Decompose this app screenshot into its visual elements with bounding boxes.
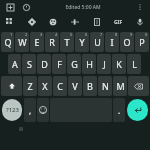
staticText: T: [64, 36, 70, 48]
button[interactable]: R: [45, 32, 59, 52]
button[interactable]: B: [83, 76, 97, 96]
staticText: Z: [27, 80, 33, 92]
staticText: 5: [70, 32, 73, 37]
button[interactable]: Emoji: [37, 98, 49, 122]
staticText: 3: [40, 32, 43, 37]
button[interactable]: E: [30, 32, 44, 52]
button[interactable]: Backspace: [128, 76, 149, 96]
staticText: Y: [79, 36, 85, 48]
button[interactable]: Enter: [127, 99, 148, 121]
button[interactable]: V: [68, 76, 82, 96]
staticText: .: [118, 105, 121, 116]
staticText: I: [110, 36, 114, 48]
button[interactable]: Adjust: [68, 15, 82, 29]
button[interactable]: K: [112, 54, 126, 74]
staticText: K: [116, 58, 122, 70]
staticText: A: [12, 58, 18, 70]
button[interactable]: .: [113, 98, 125, 122]
button[interactable]: Reminder: [20, 1, 32, 13]
staticText: 9: [130, 32, 133, 37]
staticText: X: [42, 80, 48, 92]
staticText: S: [27, 58, 32, 70]
button[interactable]: S: [22, 54, 36, 74]
button[interactable]: Q: [1, 32, 14, 52]
button[interactable]: M: [113, 76, 127, 96]
button[interactable]: Shift: [1, 76, 22, 96]
button[interactable]: ,: [24, 98, 36, 122]
button[interactable]: GIF: [111, 15, 125, 29]
staticText: Edited 5:00 AM: [65, 4, 101, 11]
button[interactable]: N: [98, 76, 112, 96]
staticText: GIF: [114, 19, 123, 26]
button[interactable]: L: [127, 54, 141, 74]
staticText: 1: [10, 32, 13, 37]
staticText: J: [103, 58, 106, 70]
staticText: G: [71, 58, 78, 70]
staticText: 2: [25, 32, 28, 37]
staticText: F: [57, 58, 62, 70]
button[interactable]: A: [8, 54, 21, 74]
button[interactable]: O: [120, 32, 134, 52]
staticText: O: [123, 36, 131, 48]
staticText: 6: [85, 32, 88, 37]
staticText: R: [49, 36, 55, 48]
button[interactable]: Z: [23, 76, 37, 96]
button[interactable]: W: [15, 32, 29, 52]
button[interactable]: J: [97, 54, 111, 74]
staticText: D: [41, 58, 48, 70]
staticText: U: [94, 36, 101, 48]
button[interactable]: H: [82, 54, 96, 74]
button[interactable]: G: [67, 54, 81, 74]
button[interactable]: Voice input: [133, 15, 147, 29]
staticText: N: [102, 80, 109, 92]
staticText: H: [86, 58, 93, 70]
button[interactable]: Clipboard: [90, 15, 104, 29]
staticText: 7: [100, 32, 103, 37]
button[interactable]: U: [90, 32, 104, 52]
staticText: V: [72, 80, 78, 92]
button[interactable]: D: [37, 54, 51, 74]
staticText: B: [87, 80, 93, 92]
button[interactable]: T: [60, 32, 74, 52]
staticText: P: [139, 36, 145, 48]
button[interactable]: Add: [4, 1, 16, 13]
button[interactable]: ?123: [2, 99, 22, 121]
button[interactable]: X: [38, 76, 52, 96]
staticText: 4: [55, 32, 58, 37]
staticText: ,: [29, 105, 32, 116]
staticText: 0: [145, 32, 148, 37]
button[interactable]: C: [53, 76, 67, 96]
button[interactable]: F: [52, 54, 66, 74]
staticText: 8: [115, 32, 118, 37]
button[interactable]: Settings: [25, 15, 39, 29]
staticText: L: [132, 58, 137, 70]
button[interactable]: Theme: [46, 15, 60, 29]
staticText: C: [57, 80, 63, 92]
button[interactable]: Apps: [3, 15, 17, 29]
button[interactable]: Keyboard switcher: [18, 126, 23, 131]
button[interactable]: More options: [134, 1, 146, 13]
staticText: E: [34, 36, 40, 48]
button[interactable]: P: [135, 32, 149, 52]
staticText: Q: [4, 36, 12, 48]
staticText: M: [116, 80, 125, 92]
button[interactable]: Y: [75, 32, 89, 52]
button[interactable]: I: [105, 32, 119, 52]
staticText: W: [18, 36, 27, 48]
staticText: ?123: [6, 106, 19, 114]
